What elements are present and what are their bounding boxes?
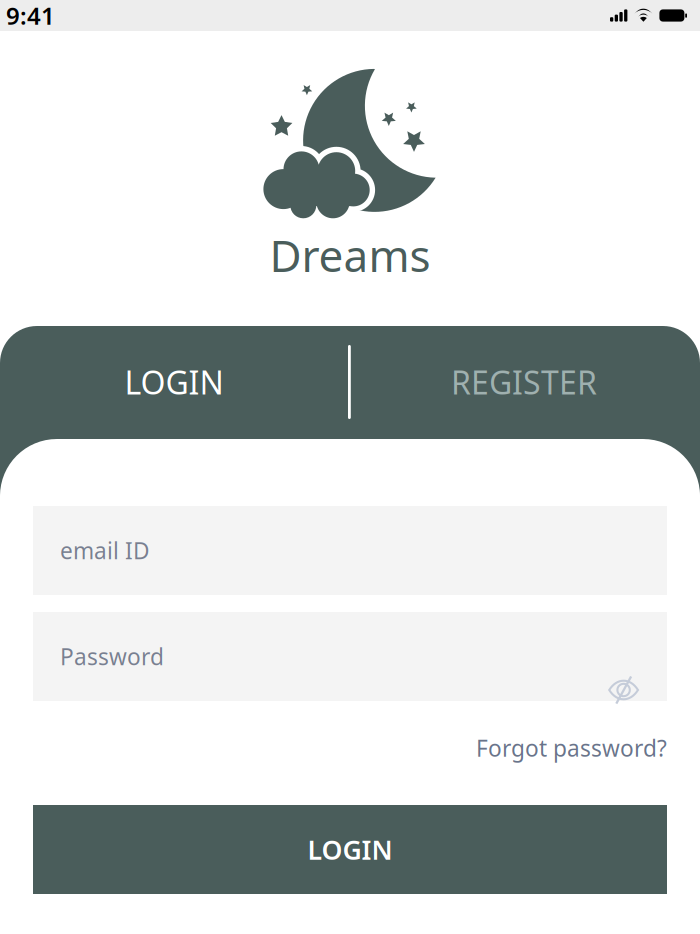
staticText: REGISTER bbox=[451, 361, 597, 403]
button[interactable]: REGISTER bbox=[348, 332, 700, 432]
button[interactable]: LOGIN bbox=[0, 332, 348, 432]
button[interactable]: Show password bbox=[601, 668, 649, 712]
staticText: LOGIN bbox=[307, 832, 392, 867]
staticText: Dreams bbox=[269, 226, 430, 284]
staticText: LOGIN bbox=[124, 361, 223, 403]
staticText: Forgot password? bbox=[476, 733, 667, 763]
button[interactable]: Forgot password? bbox=[367, 725, 667, 771]
staticText: 9:41 bbox=[6, 0, 55, 31]
staticText: email ID bbox=[60, 535, 150, 565]
staticText: Password bbox=[60, 641, 164, 671]
button[interactable]: LOGIN bbox=[33, 805, 667, 894]
